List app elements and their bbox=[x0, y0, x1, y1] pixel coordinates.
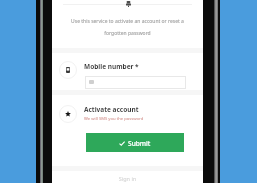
other: Activate bbox=[59, 105, 77, 123]
button[interactable] bbox=[85, 76, 186, 89]
staticText: Submit bbox=[128, 139, 151, 148]
staticText: Mobile number * bbox=[84, 62, 139, 71]
staticText: Use this service to activate an account … bbox=[58, 18, 197, 37]
other: Mobile bbox=[59, 61, 77, 79]
button[interactable]: Submit bbox=[86, 133, 184, 152]
staticText: We will SMS you the password bbox=[84, 116, 144, 122]
other: Logo bbox=[126, 1, 131, 7]
staticText: Sign in bbox=[52, 175, 203, 182]
staticText: Activate account bbox=[84, 105, 139, 114]
